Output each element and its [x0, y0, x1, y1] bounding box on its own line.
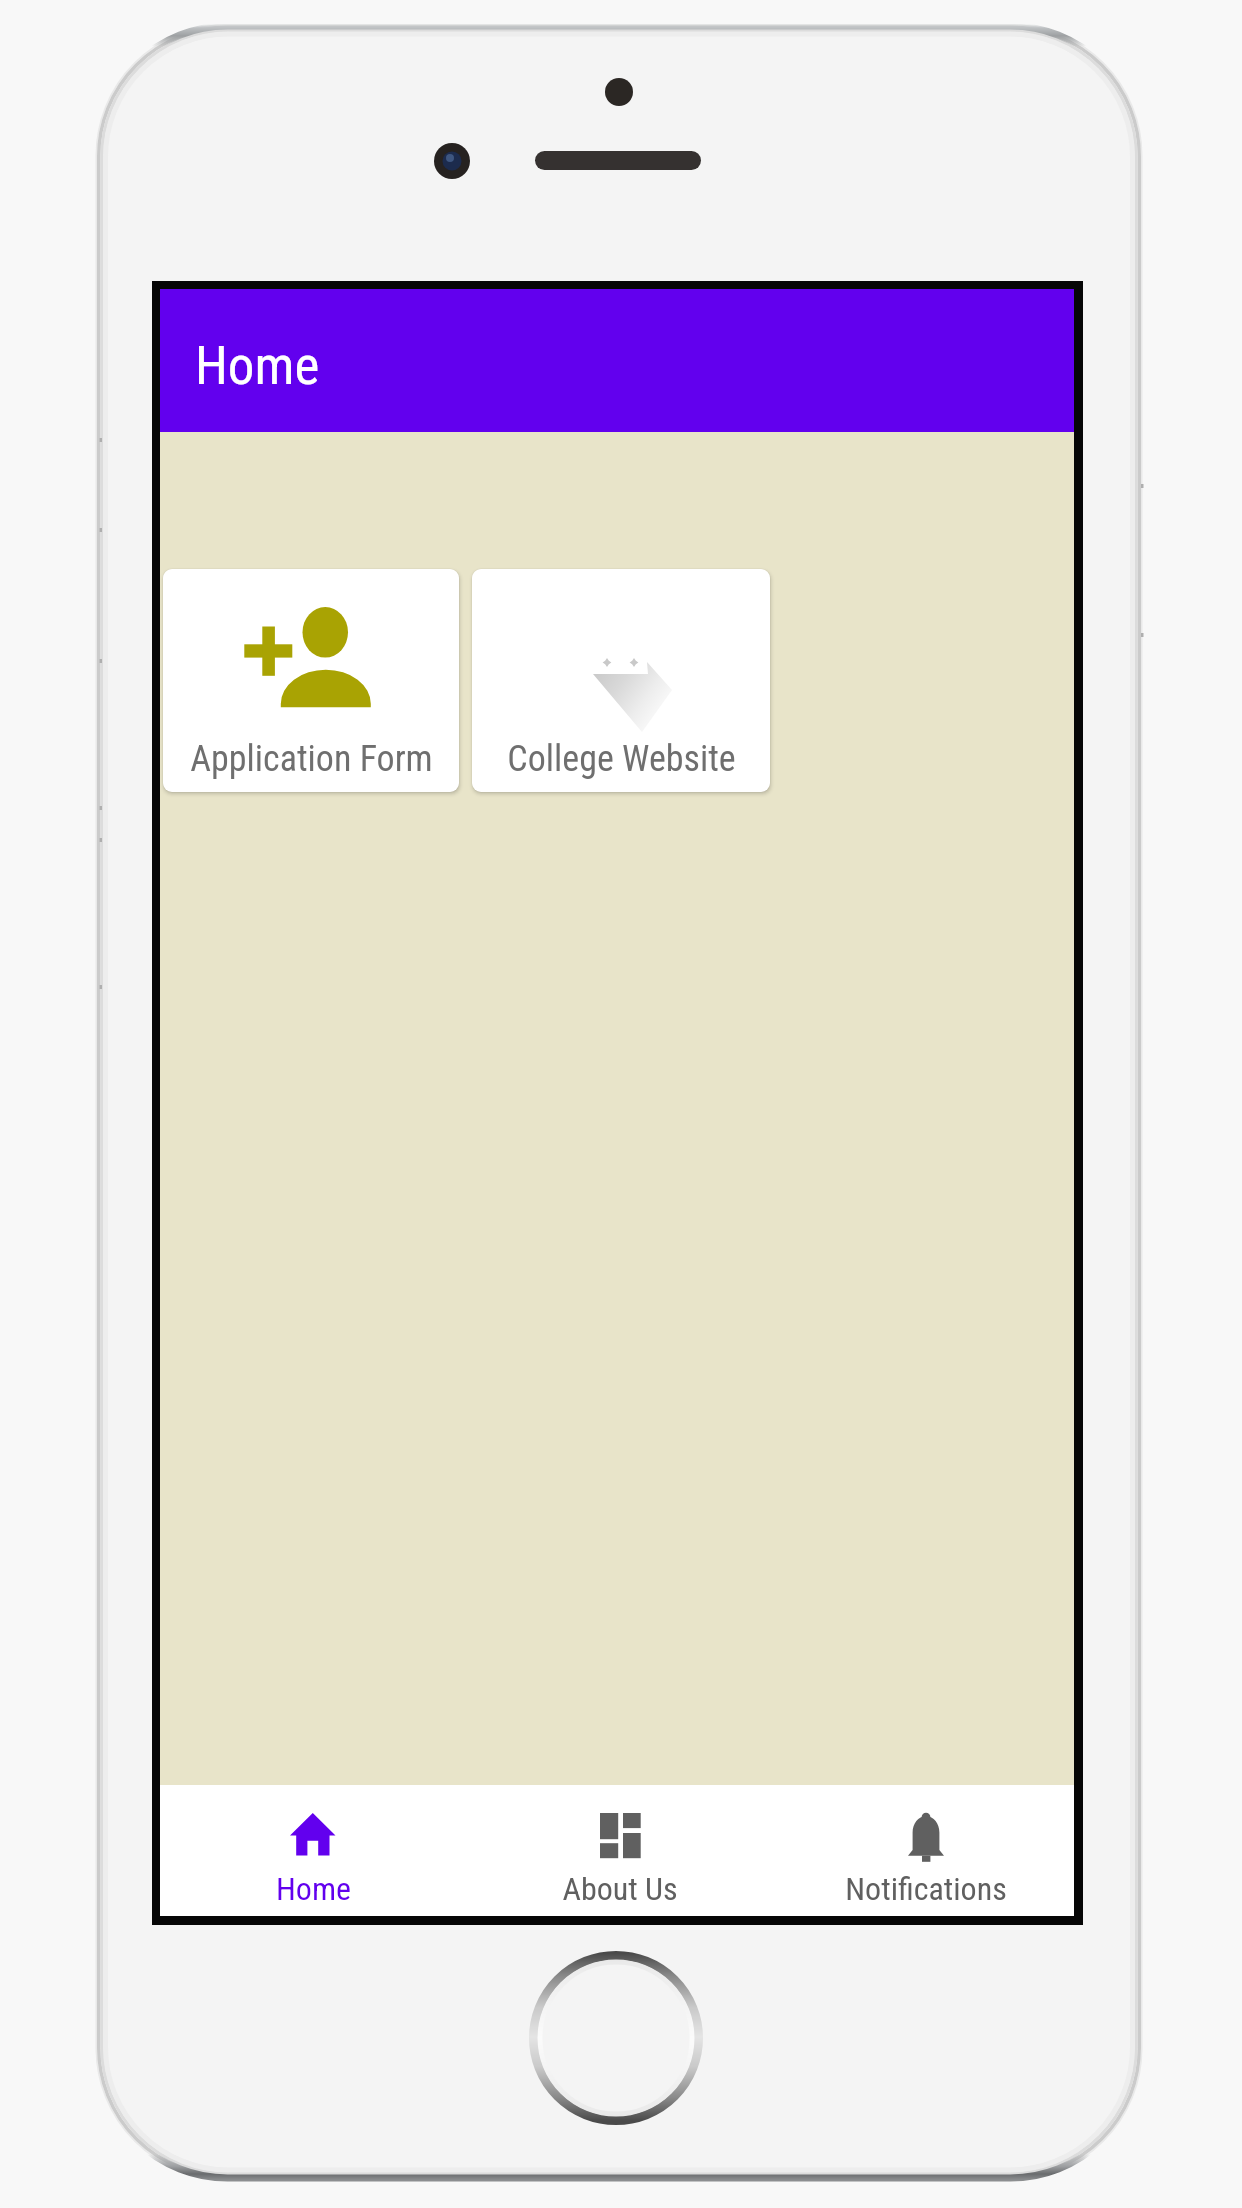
staticText: Home	[195, 335, 320, 397]
button[interactable]: Notifications	[778, 1785, 1074, 1916]
other: About Us	[600, 1813, 641, 1859]
staticText: Notifications	[845, 1870, 1007, 1908]
staticText: About Us	[562, 1870, 678, 1908]
button[interactable]: Application Form	[163, 569, 459, 792]
other: Home	[290, 1813, 336, 1856]
staticText: Application Form	[190, 738, 433, 780]
button[interactable]: College Website	[472, 569, 770, 792]
staticText: Home	[276, 1870, 351, 1908]
other: Notifications	[908, 1813, 944, 1862]
button[interactable]: About Us	[467, 1785, 773, 1916]
staticText: College Website	[507, 738, 736, 780]
button[interactable]: Home	[160, 1785, 466, 1916]
